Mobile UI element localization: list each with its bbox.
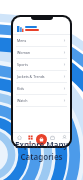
button[interactable]: Watch (13, 95, 70, 106)
staticText: Category (25, 141, 36, 144)
button[interactable]: Profile (59, 134, 70, 145)
staticText: Basket (49, 141, 57, 144)
staticText: Profile (61, 141, 69, 144)
button[interactable]: Mens (13, 35, 70, 46)
staticText: Jackets & Trends (17, 74, 45, 79)
button[interactable]: Kids (13, 83, 70, 94)
button[interactable]: Category (25, 134, 36, 145)
button[interactable]: Sports (13, 59, 70, 70)
staticText: Explore Many (15, 139, 68, 150)
button[interactable]: Jackets & Trends (13, 71, 70, 82)
button[interactable]: Home (14, 134, 25, 145)
staticText: Kids (17, 86, 25, 91)
staticText: Woman (17, 50, 31, 55)
button[interactable]: Basket (47, 134, 58, 145)
button[interactable]: Woman (13, 47, 70, 58)
staticText: Catagories (20, 151, 63, 162)
staticText: Sports (17, 62, 28, 67)
button[interactable]: Cart (36, 134, 47, 145)
staticText: Mens (17, 38, 27, 43)
staticText: Watch (17, 98, 28, 103)
staticText: Home (16, 141, 23, 144)
